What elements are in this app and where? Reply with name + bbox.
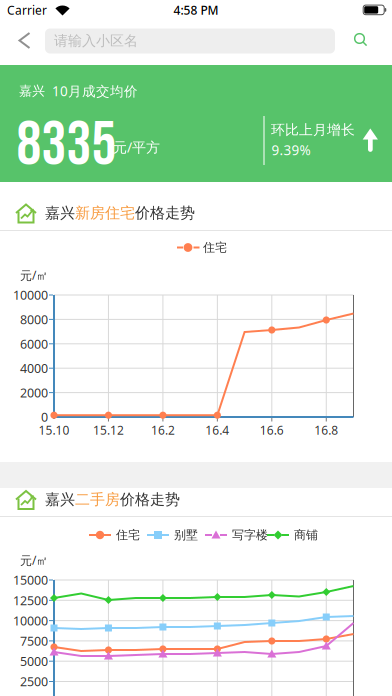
staticText: 元/㎡ (20, 552, 48, 568)
staticText: 4000 (20, 360, 48, 377)
staticText: 8335 (16, 108, 116, 183)
staticText: 价格走势 (120, 490, 180, 509)
staticText: 0 (41, 408, 48, 425)
staticText: 6000 (20, 335, 48, 352)
staticText: 二手房 (75, 490, 120, 509)
staticText: 住宅 (116, 527, 140, 542)
staticText: 7500 (20, 632, 48, 649)
staticText: 15.10 (38, 422, 69, 438)
staticText: Carrier (7, 2, 47, 18)
staticText: 写字楼 (232, 527, 268, 542)
staticText: 10月成交均价 (52, 82, 138, 100)
staticText: 10000 (13, 286, 48, 303)
staticText: 16.2 (151, 422, 175, 438)
staticText: 5000 (20, 653, 48, 670)
staticText: 16.4 (205, 422, 229, 438)
staticText: 16.6 (260, 422, 284, 438)
staticText: 9.39% (271, 141, 310, 159)
staticText: 8000 (20, 311, 48, 328)
button[interactable]: 请输入小区名 (45, 28, 335, 53)
staticText: 10000 (13, 612, 48, 629)
staticText: 嘉兴 (45, 490, 75, 509)
staticText: 价格走势 (135, 203, 195, 222)
staticText: 住宅 (203, 240, 227, 255)
button[interactable]: Search (353, 32, 368, 47)
button[interactable]: Back (18, 32, 31, 49)
staticText: 新房住宅 (75, 203, 135, 222)
staticText: 4:58 PM (173, 2, 218, 18)
staticText: 15000 (13, 571, 48, 588)
staticText: 商铺 (294, 527, 318, 542)
staticText: 12500 (13, 592, 48, 609)
staticText: 2500 (20, 673, 48, 690)
staticText: 环比上月增长 (271, 121, 355, 139)
staticText: 别墅 (174, 527, 198, 542)
staticText: 元/平方 (113, 137, 160, 157)
staticText: 15.12 (93, 422, 124, 438)
staticText: 2000 (20, 384, 48, 401)
staticText: 16.8 (314, 422, 338, 438)
staticText: 请输入小区名 (54, 32, 138, 50)
staticText: 嘉兴 (19, 83, 45, 99)
staticText: 嘉兴 (45, 203, 75, 222)
staticText: 元/㎡ (20, 267, 48, 283)
